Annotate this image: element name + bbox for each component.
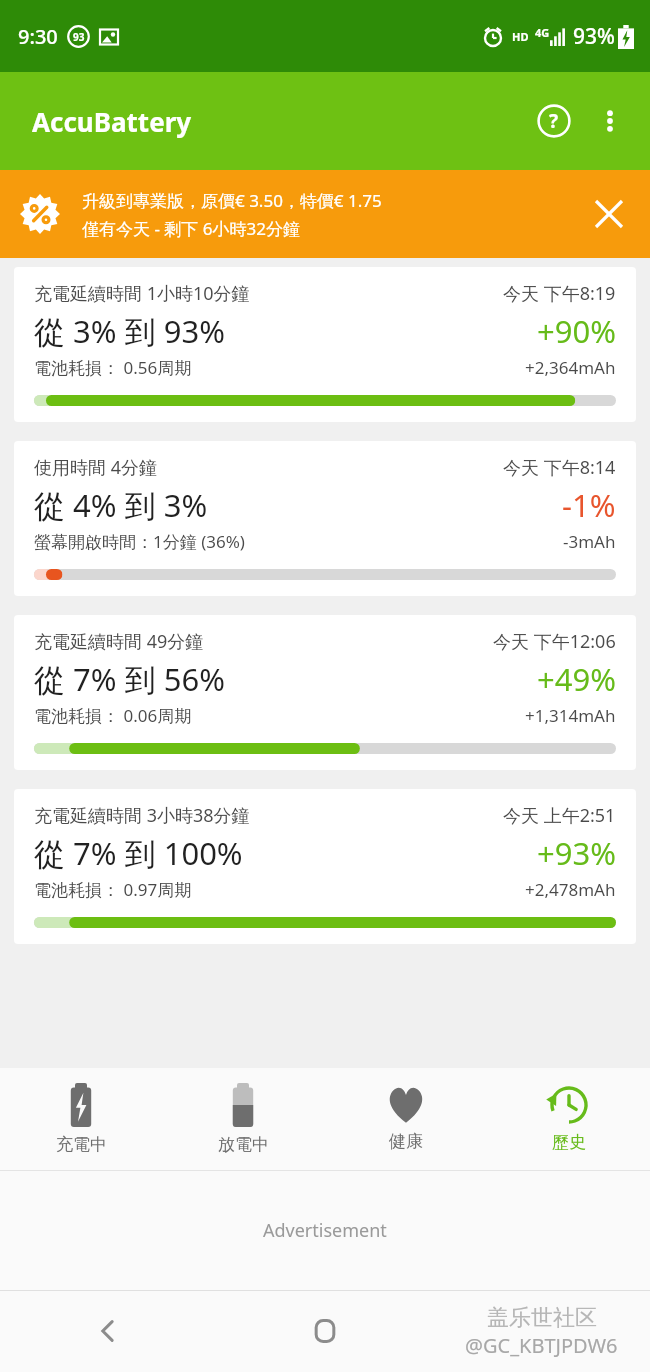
staticText: -1% <box>562 484 616 526</box>
staticText: -3mAh <box>563 530 616 553</box>
button[interactable]: 充電延續時間 1小時10分鐘 <box>14 267 636 422</box>
button[interactable]: 健康 <box>324 1076 487 1162</box>
staticText: 93% <box>573 22 615 51</box>
staticText: 電池耗損： 0.56周期 <box>34 356 525 379</box>
staticText: 充電延續時間 49分鐘 <box>34 629 493 654</box>
staticText: @GC_KBTJPDW6 <box>465 1332 618 1359</box>
staticText: 放電中 <box>218 1134 269 1155</box>
staticText: 螢幕開啟時間：1分鐘 (36%) <box>34 530 563 553</box>
button[interactable]: 放電中 <box>162 1073 324 1165</box>
staticText: 今天 上午2:51 <box>503 803 616 828</box>
staticText: 4G <box>535 25 550 40</box>
button[interactable]: 歷史 <box>487 1075 650 1163</box>
button[interactable]: 充電中 <box>0 1073 162 1165</box>
button[interactable]: More options <box>582 93 638 149</box>
staticText: ? <box>549 108 559 134</box>
staticText: 充電延續時間 1小時10分鐘 <box>34 281 503 306</box>
staticText: +90% <box>537 310 616 352</box>
staticText: 盖乐世社区 <box>487 1304 597 1332</box>
staticText: 電池耗損： 0.97周期 <box>34 878 525 901</box>
staticText: 使用時間 4分鐘 <box>34 455 503 480</box>
staticText: +93% <box>537 832 616 874</box>
button[interactable]: 充電延續時間 3小時38分鐘 <box>14 789 636 944</box>
staticText: 歷史 <box>552 1132 586 1153</box>
staticText: 升級到專業版，原價€ 3.50，特價€ 1.75 <box>82 189 382 212</box>
staticText: AccuBattery <box>32 104 192 139</box>
staticText: 從 4% 到 3% <box>34 484 562 526</box>
staticText: 充電中 <box>56 1134 107 1155</box>
staticText: 今天 下午8:19 <box>503 281 616 306</box>
staticText: 93 <box>73 30 85 44</box>
button[interactable]: 充電延續時間 49分鐘 <box>14 615 636 770</box>
staticText: 健康 <box>389 1131 423 1152</box>
staticText: 從 3% 到 93% <box>34 310 537 352</box>
staticText: +1,314mAh <box>525 704 616 727</box>
button[interactable]: Back <box>0 1290 216 1372</box>
staticText: 今天 下午12:06 <box>493 629 616 654</box>
staticText: 9:30 <box>18 23 58 50</box>
staticText: HD <box>512 29 529 44</box>
button[interactable]: 升級到專業版，原價€ 3.50，特價€ 1.75 <box>0 170 650 258</box>
staticText: +2,364mAh <box>525 356 616 379</box>
button[interactable]: Dismiss <box>578 183 640 245</box>
staticText: 從 7% 到 56% <box>34 658 537 700</box>
staticText: 從 7% 到 100% <box>34 832 537 874</box>
staticText: 今天 下午8:14 <box>503 455 616 480</box>
staticText: 僅有今天 - 剩下 6小時32分鐘 <box>82 217 300 240</box>
staticText: Advertisement <box>263 1218 387 1243</box>
staticText: +49% <box>537 658 616 700</box>
button[interactable]: Help <box>526 93 582 149</box>
staticText: 充電延續時間 3小時38分鐘 <box>34 803 503 828</box>
button[interactable]: Recents <box>433 1290 650 1372</box>
staticText: 電池耗損： 0.06周期 <box>34 704 525 727</box>
button[interactable]: Home <box>216 1290 433 1372</box>
button[interactable]: 使用時間 4分鐘 <box>14 441 636 596</box>
staticText: +2,478mAh <box>525 878 616 901</box>
